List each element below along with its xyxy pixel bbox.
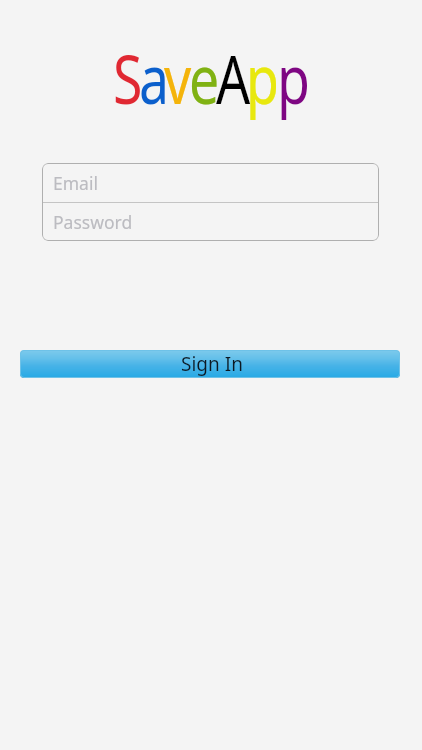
staticText: p bbox=[246, 32, 280, 123]
staticText: Sign In bbox=[181, 351, 243, 377]
staticText: v bbox=[164, 32, 192, 123]
staticText: Email bbox=[53, 171, 98, 195]
staticText: p bbox=[277, 32, 311, 123]
staticText: e bbox=[189, 32, 219, 123]
staticText: A bbox=[216, 32, 250, 123]
button[interactable]: Email bbox=[42, 163, 379, 202]
staticText: S bbox=[113, 32, 143, 123]
other: SaveApp bbox=[0, 0, 422, 130]
button[interactable]: Sign In bbox=[20, 350, 400, 378]
button[interactable]: Password bbox=[42, 203, 379, 241]
staticText: Password bbox=[53, 210, 133, 234]
staticText: a bbox=[139, 32, 169, 123]
